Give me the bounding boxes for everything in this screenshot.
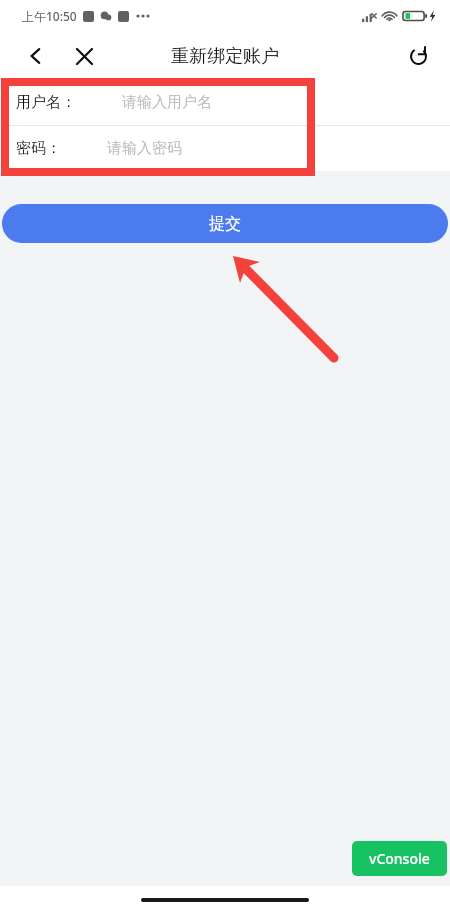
staticText: 密码： [16, 139, 61, 158]
button[interactable]: Refresh [398, 36, 438, 76]
button[interactable]: vConsole [352, 841, 447, 876]
button[interactable]: 密码： [0, 126, 450, 171]
staticText: 重新绑定账户 [171, 45, 279, 68]
staticText: 请输入用户名 [122, 93, 212, 112]
button[interactable]: Close [64, 36, 104, 76]
button[interactable]: 提交 [2, 204, 448, 243]
staticText: vConsole [369, 849, 430, 868]
button[interactable]: Back [16, 36, 56, 76]
button[interactable]: 用户名： [0, 80, 450, 125]
staticText: 提交 [209, 214, 241, 234]
staticText: 用户名： [16, 93, 76, 112]
staticText: 上午10:50 [22, 8, 77, 24]
staticText: 请输入密码 [107, 139, 182, 158]
